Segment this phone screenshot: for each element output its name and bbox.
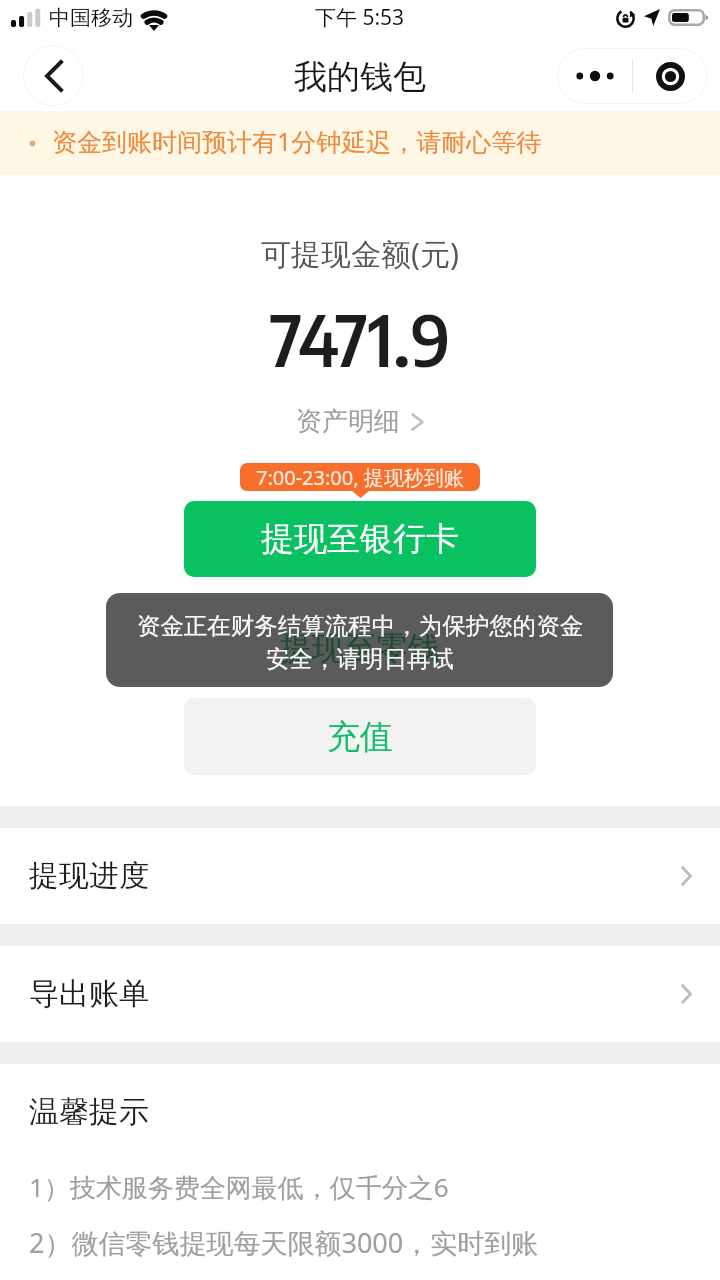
button[interactable]: 导出账单 (0, 946, 720, 1042)
staticText: 2）微信零钱提现每天限额3000，实时到账 (29, 1224, 539, 1261)
button[interactable]: 充值 (184, 698, 536, 775)
staticText: 可提现金额(元) (261, 233, 459, 274)
staticText: 资产明细 (296, 405, 400, 438)
staticText: 充值 (327, 716, 393, 758)
staticText: 中国移动 (49, 5, 133, 31)
staticText: 下午 5:53 (315, 3, 405, 32)
staticText: 温馨提示 (29, 1093, 149, 1131)
staticText: 1）技术服务费全网最低，仅千分之6 (29, 1169, 449, 1205)
staticText: 资金正在财务结算流程中，为保护您的资金 安全，请明日再试 (110, 611, 610, 674)
staticText: 7471.9 (270, 295, 451, 382)
button[interactable]: 提现进度 (0, 828, 720, 924)
button[interactable]: Back (23, 45, 84, 106)
staticText: 7:00-23:00, 提现秒到账 (256, 464, 464, 491)
staticText: 提现至银行卡 (261, 518, 459, 560)
staticText: 提现进度 (29, 857, 149, 895)
staticText: 提现至零钱 (280, 628, 440, 668)
staticText: 资金到账时间预计有1分钟延迟，请耐心等待 (52, 124, 542, 158)
staticText: 我的钱包 (294, 56, 426, 98)
button[interactable]: More options (557, 48, 632, 104)
button[interactable]: 资产明细 (296, 405, 424, 438)
button[interactable]: 提现至银行卡 (184, 501, 536, 577)
staticText: 导出账单 (29, 975, 149, 1013)
button[interactable]: Close mini program (633, 48, 708, 104)
